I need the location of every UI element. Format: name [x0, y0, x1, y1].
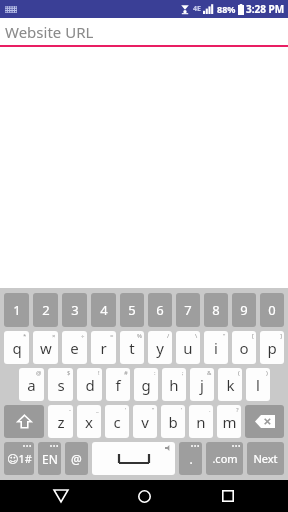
button[interactable]: Next — [247, 442, 284, 475]
staticText: 8 — [212, 301, 220, 319]
staticText: ; — [182, 369, 184, 377]
button[interactable]: 6 — [148, 293, 172, 327]
staticText: m — [222, 412, 237, 432]
staticText: f — [115, 375, 121, 395]
button[interactable]: t — [120, 331, 144, 364]
button[interactable]: o — [232, 331, 256, 364]
button[interactable]: Back — [38, 480, 84, 512]
button[interactable]: EN — [38, 442, 61, 475]
button[interactable]: c — [105, 405, 129, 438]
button[interactable]: s — [48, 368, 73, 401]
staticText: u — [183, 338, 193, 358]
staticText: l — [256, 375, 260, 395]
staticText: r — [100, 338, 107, 358]
button[interactable]: 8 — [204, 293, 228, 327]
button[interactable]: d — [77, 368, 102, 401]
staticText: e — [70, 338, 79, 358]
button[interactable]: .com — [206, 442, 243, 475]
button[interactable]: Recents — [205, 480, 251, 512]
staticText: _ — [96, 406, 99, 414]
button[interactable]: Shift — [4, 405, 44, 438]
staticText: x — [85, 412, 93, 432]
button[interactable]: Backspace — [245, 405, 284, 438]
staticText: k — [226, 375, 235, 395]
staticText: h — [169, 375, 179, 395]
button[interactable]: v — [133, 405, 157, 438]
staticText: ' — [125, 406, 127, 414]
button[interactable]: 5 — [120, 293, 144, 327]
staticText: 1 — [13, 301, 21, 319]
button[interactable]: h — [162, 368, 186, 401]
button[interactable]: z — [48, 405, 73, 438]
button[interactable]: ☺1# — [4, 442, 34, 475]
button[interactable]: x — [77, 405, 101, 438]
button[interactable]: 4 — [91, 293, 116, 327]
button[interactable]: p — [260, 331, 284, 364]
staticText: \ — [195, 332, 198, 340]
button[interactable]: q — [4, 331, 29, 364]
staticText: : — [154, 369, 156, 377]
button[interactable]: m — [217, 405, 241, 438]
button[interactable]: Home — [121, 480, 167, 512]
staticText: ) — [266, 369, 268, 377]
staticText: w — [40, 338, 52, 358]
button[interactable]: Space — [92, 442, 175, 475]
button[interactable]: e — [62, 331, 87, 364]
staticText: " — [223, 332, 226, 340]
staticText: p — [267, 338, 277, 358]
button[interactable]: k — [218, 368, 242, 401]
staticText: ! — [98, 369, 100, 377]
staticText: / — [167, 332, 170, 340]
button[interactable]: y — [148, 331, 172, 364]
staticText: @ — [36, 369, 42, 377]
staticText: 6 — [156, 301, 164, 319]
button[interactable]: @ — [65, 442, 88, 475]
button[interactable]: 9 — [232, 293, 256, 327]
staticText: . — [209, 406, 211, 414]
button[interactable]: r — [91, 331, 116, 364]
staticText: c — [113, 412, 121, 432]
staticText: t — [129, 338, 135, 358]
staticText: @ — [71, 451, 82, 467]
button[interactable]: Website URL — [0, 18, 288, 45]
staticText: i — [214, 338, 218, 358]
staticText: % — [137, 332, 142, 340]
button[interactable]: 7 — [176, 293, 200, 327]
staticText: ÷ — [81, 332, 85, 340]
staticText: 7 — [184, 301, 192, 319]
staticText: b — [168, 412, 178, 432]
button[interactable]: a — [19, 368, 44, 401]
button[interactable]: l — [246, 368, 270, 401]
staticText: ☺1# — [7, 451, 32, 466]
button[interactable]: 2 — [33, 293, 58, 327]
staticText: [ — [252, 332, 254, 340]
staticText: × — [52, 332, 56, 340]
staticText: $ — [67, 369, 71, 377]
button[interactable]: w — [33, 331, 58, 364]
staticText: 4 — [100, 301, 108, 319]
staticText: " — [152, 406, 155, 414]
button[interactable]: b — [161, 405, 185, 438]
button[interactable]: f — [106, 368, 130, 401]
button[interactable]: g — [134, 368, 158, 401]
button[interactable]: 1 — [4, 293, 29, 327]
staticText: j — [200, 375, 204, 395]
staticText: ' — [181, 406, 183, 414]
button[interactable]: j — [190, 368, 214, 401]
staticText: = — [110, 332, 114, 340]
button[interactable]: n — [189, 405, 213, 438]
button[interactable]: i — [204, 331, 228, 364]
staticText: ( — [238, 369, 240, 377]
button[interactable]: 3 — [62, 293, 87, 327]
staticText: o — [239, 338, 249, 358]
staticText: z — [57, 412, 65, 432]
staticText: 9 — [240, 301, 248, 319]
button[interactable]: u — [176, 331, 200, 364]
staticText: 3:28 PM — [246, 2, 285, 16]
button[interactable]: . — [179, 442, 202, 475]
staticText: - — [69, 406, 71, 414]
staticText: v — [141, 412, 149, 432]
button[interactable]: 0 — [260, 293, 284, 327]
staticText: . — [189, 451, 193, 467]
staticText: ] — [280, 332, 282, 340]
